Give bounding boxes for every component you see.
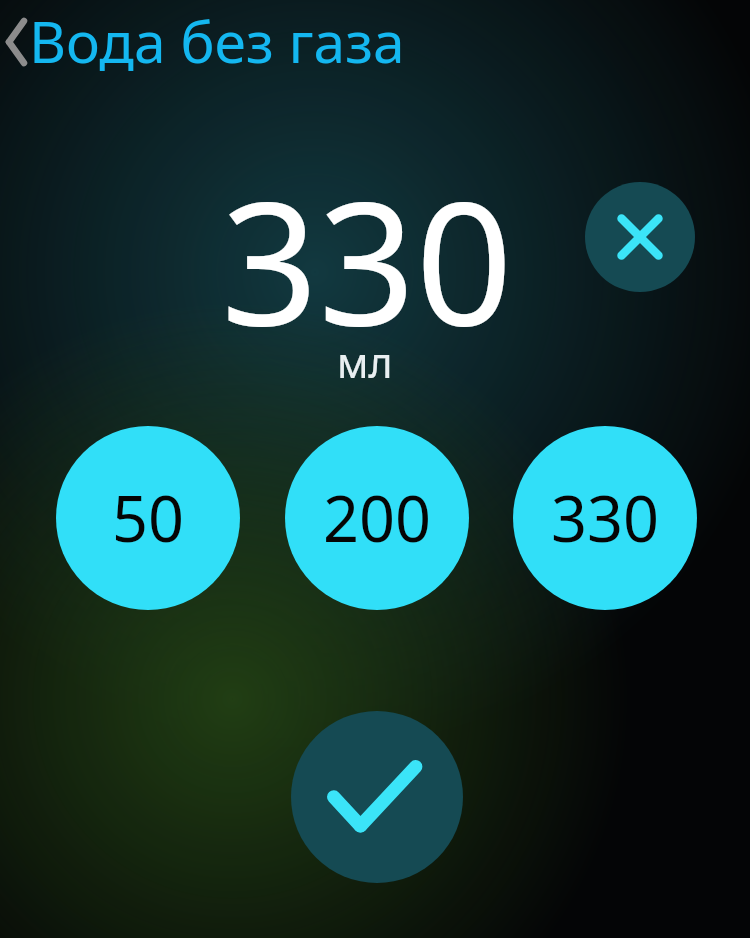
- staticText: Вода без газа: [29, 2, 405, 80]
- button[interactable]: 200: [285, 426, 469, 610]
- button[interactable]: Back: [0, 0, 580, 88]
- button[interactable]: Confirm: [291, 711, 463, 883]
- staticText: 330: [551, 475, 660, 561]
- staticText: 200: [323, 475, 432, 561]
- button[interactable]: Clear: [585, 182, 695, 292]
- staticText: 330: [221, 143, 513, 375]
- staticText: мл: [337, 334, 393, 390]
- button[interactable]: 330: [513, 426, 697, 610]
- button[interactable]: 50: [56, 426, 240, 610]
- staticText: 50: [112, 475, 185, 561]
